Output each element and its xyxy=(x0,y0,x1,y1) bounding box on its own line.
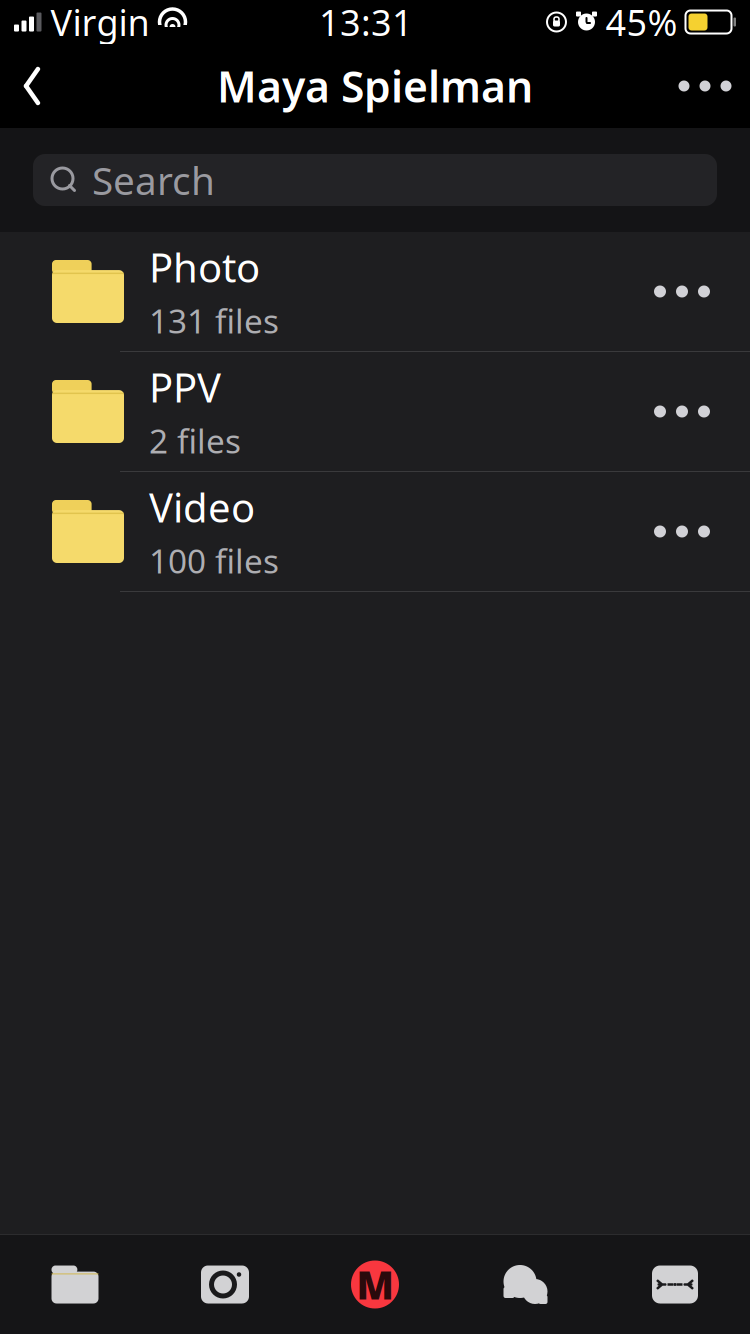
button[interactable]: More options xyxy=(660,44,750,128)
button[interactable]: Transfers xyxy=(600,1235,750,1334)
staticText: 131 files xyxy=(149,298,279,343)
button[interactable]: Back xyxy=(0,44,64,128)
staticText: Video xyxy=(149,480,255,533)
button[interactable]: Mega home xyxy=(300,1235,450,1334)
button[interactable]: PPV xyxy=(0,352,750,471)
staticText: 45% xyxy=(605,0,677,46)
staticText: Search xyxy=(92,154,215,206)
button[interactable]: Video xyxy=(0,472,750,591)
staticText: M xyxy=(356,1259,393,1310)
button[interactable]: Search xyxy=(33,154,717,206)
staticText: Virgin xyxy=(50,0,149,46)
button[interactable]: Files xyxy=(0,1235,150,1334)
staticText: 100 files xyxy=(149,538,279,583)
staticText: Maya Spielman xyxy=(217,58,533,114)
button[interactable]: Camera xyxy=(150,1235,300,1334)
staticText: Photo xyxy=(149,240,260,293)
button[interactable]: Chat xyxy=(450,1235,600,1334)
staticText: 13:31 xyxy=(319,0,413,46)
button[interactable]: Photo xyxy=(0,232,750,351)
staticText: 2 files xyxy=(149,418,241,463)
staticText: PPV xyxy=(149,360,221,413)
